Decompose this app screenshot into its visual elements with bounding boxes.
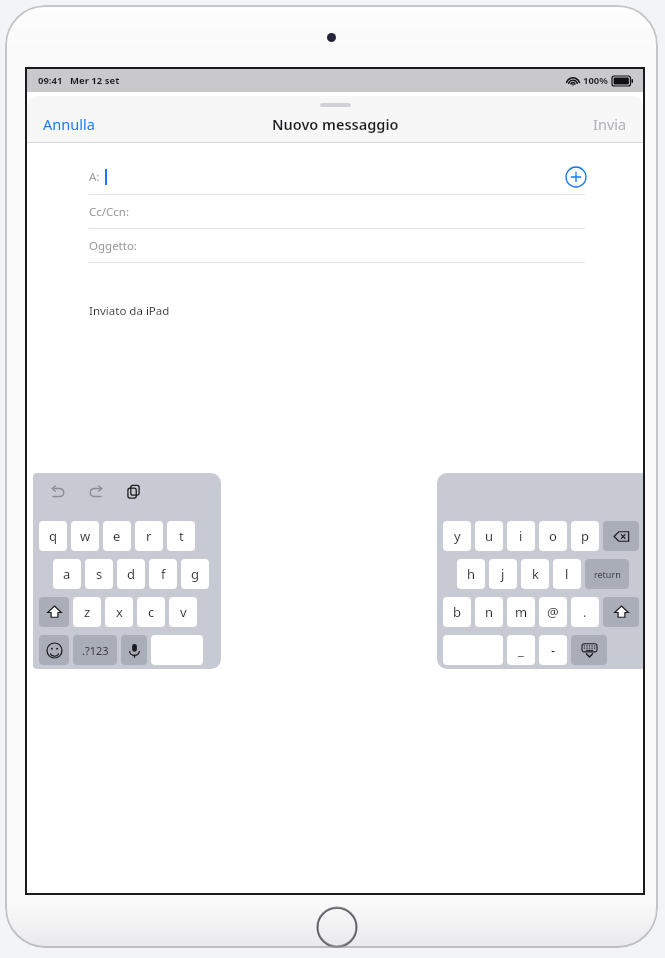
staticText: c [148, 603, 155, 621]
button[interactable]: z [73, 597, 101, 627]
button[interactable]: v [169, 597, 197, 627]
button[interactable]: Aggiungi contatto [565, 166, 587, 188]
button[interactable]: Maiuscole [603, 597, 639, 627]
button[interactable]: l [553, 559, 581, 589]
staticText: Oggetto: [89, 238, 137, 254]
button[interactable]: Maiuscole [39, 597, 69, 627]
button[interactable]: f [149, 559, 177, 589]
button[interactable]: s [85, 559, 113, 589]
button[interactable]: o [539, 521, 567, 551]
button[interactable]: - [539, 635, 567, 665]
staticText: l [565, 565, 569, 583]
button[interactable]: u [475, 521, 503, 551]
button[interactable]: return [585, 559, 629, 589]
button[interactable]: a [53, 559, 81, 589]
staticText: . [583, 603, 587, 621]
staticText: Inviato da iPad [89, 303, 170, 319]
staticText: v [180, 603, 187, 621]
staticText: 09:41 [38, 74, 63, 87]
staticText: x [116, 603, 123, 621]
button[interactable]: . [571, 597, 599, 627]
staticText: w [80, 527, 91, 545]
staticText: return [594, 568, 621, 580]
staticText: r [146, 527, 152, 545]
staticText: - [551, 641, 556, 659]
button[interactable]: h [457, 559, 485, 589]
button[interactable]: e [103, 521, 131, 551]
button[interactable]: Invia [577, 108, 643, 140]
staticText: a [63, 565, 71, 583]
staticText: d [127, 565, 135, 583]
staticText: A: [89, 169, 100, 185]
staticText: 100% [583, 74, 608, 87]
button[interactable]: .?123 [73, 635, 117, 665]
staticText: y [454, 527, 461, 545]
staticText: j [501, 565, 505, 583]
button[interactable]: w [71, 521, 99, 551]
staticText: f [161, 565, 166, 583]
staticText: Nuovo messaggio [272, 114, 399, 134]
button[interactable]: Elimina [603, 521, 639, 551]
staticText: n [485, 603, 494, 621]
button[interactable]: i [507, 521, 535, 551]
button[interactable]: Incolla [123, 481, 145, 503]
button[interactable]: Ripristina [85, 481, 107, 503]
button[interactable]: y [443, 521, 471, 551]
button[interactable]: m [507, 597, 535, 627]
button[interactable]: j [489, 559, 517, 589]
button[interactable]: n [475, 597, 503, 627]
staticText: i [519, 527, 523, 545]
button[interactable]: d [117, 559, 145, 589]
button[interactable]: c [137, 597, 165, 627]
button[interactable]: Cc/Ccn: [27, 195, 643, 228]
button[interactable]: g [181, 559, 209, 589]
staticText: e [113, 527, 121, 545]
button[interactable]: Dettatura [121, 635, 147, 665]
staticText: s [96, 565, 103, 583]
button[interactable]: x [105, 597, 133, 627]
staticText: k [532, 565, 539, 583]
staticText: .?123 [82, 643, 109, 658]
staticText: _ [518, 641, 524, 659]
staticText: o [549, 527, 557, 545]
button[interactable]: Spazio [151, 635, 203, 665]
button[interactable]: Nascondi tastiera [571, 635, 607, 665]
button[interactable]: p [571, 521, 599, 551]
button[interactable]: Emoji [39, 635, 69, 665]
button[interactable]: q [39, 521, 67, 551]
staticText: u [485, 527, 494, 545]
staticText: Annulla [43, 114, 95, 134]
button[interactable]: k [521, 559, 549, 589]
staticText: q [49, 527, 57, 545]
button[interactable]: b [443, 597, 471, 627]
staticText: g [191, 565, 199, 583]
staticText: Invia [593, 114, 627, 134]
staticText: p [581, 527, 589, 545]
staticText: @ [547, 603, 559, 621]
staticText: Mer 12 set [70, 74, 120, 87]
button[interactable]: Annulla [27, 108, 111, 140]
staticText: h [467, 565, 476, 583]
staticText: z [84, 603, 91, 621]
button[interactable]: t [167, 521, 195, 551]
staticText: m [515, 603, 528, 621]
button[interactable]: r [135, 521, 163, 551]
staticText: t [179, 527, 184, 545]
button[interactable]: Oggetto: [27, 229, 643, 262]
button[interactable]: Spazio [443, 635, 503, 665]
button[interactable]: Annulla [47, 481, 69, 503]
staticText: Cc/Ccn: [89, 204, 130, 220]
staticText: b [453, 603, 461, 621]
button[interactable]: A: [27, 159, 643, 194]
button[interactable]: @ [539, 597, 567, 627]
button[interactable]: _ [507, 635, 535, 665]
